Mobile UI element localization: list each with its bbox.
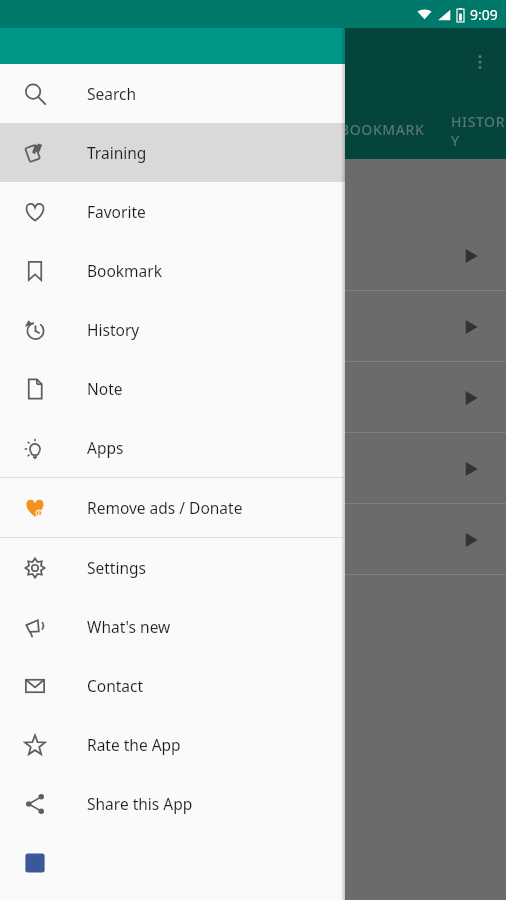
staticText: Training bbox=[87, 142, 147, 163]
staticText: Search bbox=[87, 83, 137, 104]
button[interactable]: Note bbox=[0, 359, 345, 418]
button[interactable] bbox=[0, 291, 506, 362]
staticText: Contact bbox=[87, 675, 144, 696]
button[interactable]: More options bbox=[464, 46, 496, 78]
button[interactable]: Favorite bbox=[0, 182, 345, 241]
staticText: Bookmark bbox=[87, 260, 162, 281]
button[interactable]: Settings bbox=[0, 538, 345, 597]
staticText: BOOKMARK bbox=[340, 120, 425, 139]
button[interactable]: Apps bbox=[0, 418, 345, 477]
staticText: Share this App bbox=[87, 793, 193, 814]
staticText: Rate the App bbox=[87, 734, 181, 755]
button[interactable]: HISTORY bbox=[451, 112, 506, 146]
staticText: Note bbox=[87, 378, 123, 399]
button[interactable]: Bookmark bbox=[0, 241, 345, 300]
staticText: Settings bbox=[87, 557, 146, 578]
button[interactable] bbox=[0, 833, 345, 892]
button[interactable]: Rate the App bbox=[0, 715, 345, 774]
button[interactable]: BOOKMARK bbox=[340, 120, 425, 139]
button[interactable]: What's new bbox=[0, 597, 345, 656]
button[interactable]: Contact bbox=[0, 656, 345, 715]
button[interactable]: Training bbox=[0, 123, 345, 182]
staticText: History bbox=[87, 319, 140, 340]
staticText: Remove ads / Donate bbox=[87, 497, 243, 518]
button[interactable]: History bbox=[0, 300, 345, 359]
staticText: 9:09 bbox=[470, 5, 498, 24]
staticText: Favorite bbox=[87, 201, 146, 222]
button[interactable]: Remove ads / Donate bbox=[0, 478, 345, 537]
button[interactable] bbox=[0, 220, 506, 291]
button[interactable] bbox=[0, 362, 506, 433]
staticText: HISTORY bbox=[451, 112, 506, 146]
staticText: What's new bbox=[87, 616, 171, 637]
button[interactable] bbox=[0, 504, 506, 575]
button[interactable] bbox=[0, 433, 506, 504]
button[interactable]: Search bbox=[0, 64, 345, 123]
button[interactable]: Share this App bbox=[0, 774, 345, 833]
staticText: Apps bbox=[87, 437, 124, 458]
